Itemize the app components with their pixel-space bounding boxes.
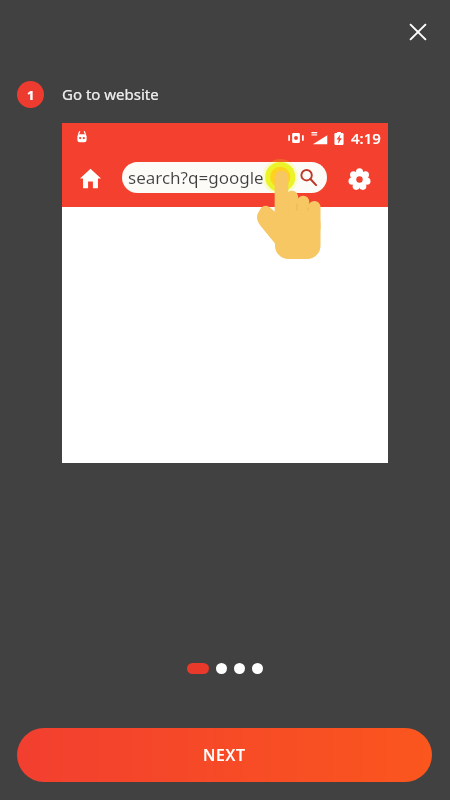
button[interactable]: Search	[299, 168, 318, 187]
button[interactable]: Home	[80, 168, 101, 189]
button[interactable]: search?q=google	[122, 162, 327, 193]
staticText: 4:19	[351, 128, 381, 148]
button[interactable]: NEXT	[17, 728, 432, 782]
button[interactable]: Close	[395, 9, 441, 55]
staticText: NEXT	[203, 744, 246, 766]
button[interactable]: 1	[17, 80, 159, 108]
staticText: 1	[27, 86, 35, 104]
staticText: search?q=google	[128, 166, 264, 189]
staticText: Go to website	[62, 84, 159, 104]
button[interactable]: Settings	[348, 168, 371, 191]
